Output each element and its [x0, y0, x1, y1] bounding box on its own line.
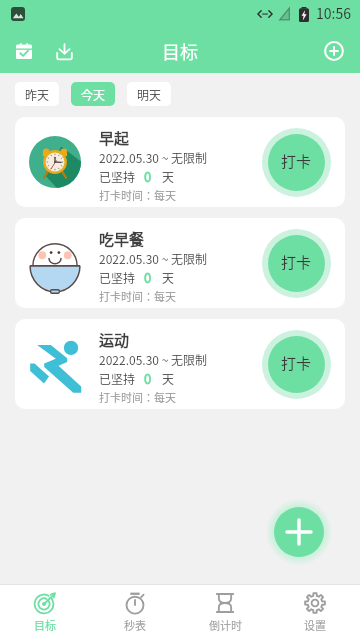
- staticText: 秒表: [124, 617, 146, 633]
- staticText: 打卡: [281, 352, 312, 374]
- staticText: 已坚持: [99, 168, 136, 185]
- staticText: 设置: [304, 617, 326, 633]
- staticText: 打卡: [281, 150, 312, 172]
- staticText: 今天: [81, 86, 106, 103]
- staticText: 早起: [99, 127, 130, 147]
- staticText: 打卡时间：每天: [99, 389, 176, 405]
- button[interactable]: 设置: [270, 585, 360, 640]
- staticText: 2022.05.30 ~ 无限制: [99, 149, 207, 166]
- staticText: 2022.05.30 ~ 无限制: [99, 351, 207, 368]
- button[interactable]: 打卡: [262, 229, 331, 298]
- staticText: 天: [162, 370, 175, 387]
- staticText: 打卡: [281, 251, 312, 273]
- staticText: 已坚持: [99, 269, 136, 286]
- staticText: 运动: [99, 329, 130, 349]
- staticText: 昨天: [25, 86, 50, 103]
- staticText: 天: [162, 269, 175, 286]
- button[interactable]: Add goal: [316, 33, 352, 69]
- button[interactable]: 打卡: [262, 330, 331, 399]
- staticText: 打卡时间：每天: [99, 187, 176, 203]
- button[interactable]: 秒表: [90, 585, 180, 640]
- button[interactable]: 目标: [0, 585, 90, 640]
- staticText: 明天: [137, 86, 162, 103]
- staticText: 2022.05.30 ~ 无限制: [99, 250, 207, 267]
- staticText: 打卡时间：每天: [99, 288, 176, 304]
- staticText: 0: [144, 268, 152, 287]
- staticText: 目标: [34, 617, 56, 633]
- staticText: 目标: [162, 38, 198, 64]
- staticText: 倒计时: [209, 617, 242, 633]
- button[interactable]: 倒计时: [180, 585, 270, 640]
- button[interactable]: 吃早餐: [15, 218, 345, 308]
- button[interactable]: Add: [274, 507, 324, 557]
- staticText: 天: [162, 168, 175, 185]
- button[interactable]: 早起: [15, 117, 345, 207]
- button[interactable]: 运动: [15, 319, 345, 409]
- staticText: 0: [144, 369, 152, 388]
- button[interactable]: 昨天: [15, 82, 59, 106]
- button[interactable]: Calendar: [6, 33, 42, 69]
- staticText: 吃早餐: [99, 228, 145, 248]
- button[interactable]: 明天: [127, 82, 171, 106]
- button[interactable]: Download: [46, 33, 82, 69]
- button[interactable]: 今天: [71, 82, 115, 106]
- staticText: 0: [144, 167, 152, 186]
- staticText: 10:56: [316, 3, 351, 23]
- staticText: 已坚持: [99, 370, 136, 387]
- button[interactable]: 打卡: [262, 128, 331, 197]
